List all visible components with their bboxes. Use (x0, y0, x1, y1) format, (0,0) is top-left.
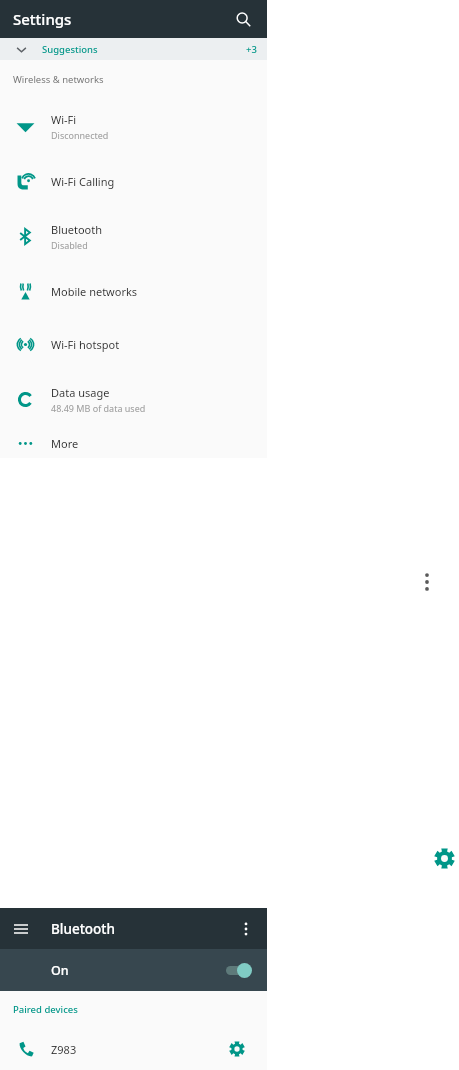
staticText: +3 (246, 43, 257, 56)
button[interactable]: Data usage (0, 371, 267, 428)
staticText: Wi-Fi Calling (51, 174, 115, 189)
staticText: Settings (13, 9, 72, 29)
staticText: More (51, 436, 79, 451)
button[interactable]: Navigation menu (6, 914, 36, 944)
staticText: On (51, 962, 69, 979)
staticText: Bluetooth (51, 222, 103, 237)
button[interactable]: More options (231, 914, 261, 944)
button[interactable]: Bluetooth (0, 208, 267, 265)
button[interactable]: Mobile networks (0, 265, 267, 318)
staticText: Disconnected (51, 129, 109, 141)
button[interactable]: Z983 (0, 1028, 267, 1070)
staticText: Wi-Fi hotspot (51, 337, 120, 352)
staticText: Wi-Fi (51, 112, 77, 127)
button[interactable]: On (0, 949, 267, 991)
button[interactable]: Wi-Fi (0, 98, 267, 155)
button[interactable]: More options (411, 566, 443, 598)
staticText: Bluetooth (51, 920, 115, 938)
staticText: Mobile networks (51, 284, 138, 299)
button[interactable]: Wi-Fi hotspot (0, 318, 267, 371)
staticText: 48.49 MB of data used (51, 402, 146, 414)
button[interactable]: Wi-Fi Calling (0, 155, 267, 208)
button[interactable]: Suggestions (0, 38, 267, 60)
staticText: Wireless & networks (13, 73, 104, 86)
button[interactable]: More (0, 428, 267, 458)
staticText: Disabled (51, 239, 88, 251)
staticText: Data usage (51, 385, 110, 400)
staticText: Paired devices (13, 1003, 78, 1016)
button[interactable]: Device settings (223, 1035, 251, 1063)
button[interactable]: Settings (429, 843, 459, 873)
staticText: Z983 (51, 1042, 77, 1057)
staticText: Suggestions (42, 43, 98, 56)
button[interactable]: Search (227, 3, 259, 35)
